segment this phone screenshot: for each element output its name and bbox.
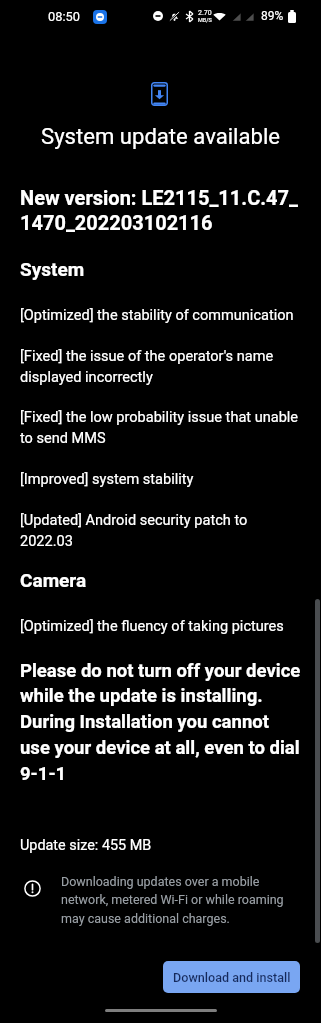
staticText: [Fixed] the issue of the operator's name… — [20, 348, 301, 386]
staticText: [Improved] system stability — [20, 471, 194, 488]
staticText: 2.70 — [198, 9, 212, 17]
staticText: Update size: 455 MB — [20, 837, 152, 854]
staticText: 08:50 — [48, 9, 80, 24]
staticText: [Updated] Android security patch to 2022… — [20, 512, 301, 550]
staticText: MB/S — [198, 17, 212, 23]
staticText: New version: LE2115_11.C.47_ 1470_202203… — [20, 186, 298, 235]
staticText: 89% — [261, 9, 284, 23]
staticText: Please do not turn off your device while… — [20, 660, 301, 785]
staticText: Downloading updates over a mobile networ… — [61, 874, 301, 926]
staticText: Download and install — [173, 970, 291, 985]
staticText: [Fixed] the low probability issue that u… — [20, 409, 301, 447]
staticText: [Optimized] the stability of communicati… — [20, 307, 294, 324]
staticText: System — [20, 258, 85, 280]
staticText: System update available — [41, 123, 280, 149]
staticText: Camera — [20, 569, 87, 591]
button[interactable]: Download and install — [163, 961, 300, 993]
staticText: [Optimized] the fluency of taking pictur… — [20, 618, 284, 635]
